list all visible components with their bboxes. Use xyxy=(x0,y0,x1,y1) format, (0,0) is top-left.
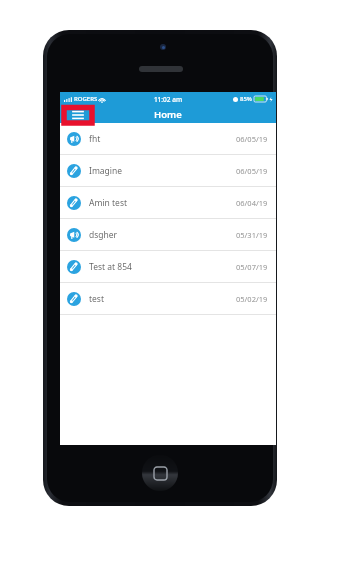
staticText: dsgher xyxy=(89,229,118,241)
button[interactable]: Open navigation menu xyxy=(64,106,92,123)
button[interactable]: Imagine xyxy=(60,155,276,187)
staticText: Home xyxy=(154,108,182,121)
staticText: ROGERS xyxy=(74,95,98,103)
staticText: test xyxy=(89,293,105,305)
staticText: 05/02/19 xyxy=(236,294,268,304)
staticText: 05/31/19 xyxy=(236,230,268,240)
staticText: 11:02 am xyxy=(60,95,276,104)
staticText: 06/05/19 xyxy=(236,134,268,144)
button[interactable]: test xyxy=(60,283,276,315)
button[interactable]: Amin test xyxy=(60,187,276,219)
button[interactable]: dsgher xyxy=(60,219,276,251)
other: Home button xyxy=(142,455,178,491)
staticText: 06/05/19 xyxy=(236,166,268,176)
staticText: Imagine xyxy=(89,165,123,177)
staticText: Amin test xyxy=(89,197,128,209)
button[interactable]: Test at 854 xyxy=(60,251,276,283)
staticText: fht xyxy=(89,133,101,145)
staticText: 06/04/19 xyxy=(236,198,268,208)
staticText: 85% xyxy=(240,95,252,103)
staticText: 05/07/19 xyxy=(236,262,268,272)
staticText: Test at 854 xyxy=(89,261,132,273)
button[interactable]: fht xyxy=(60,123,276,155)
